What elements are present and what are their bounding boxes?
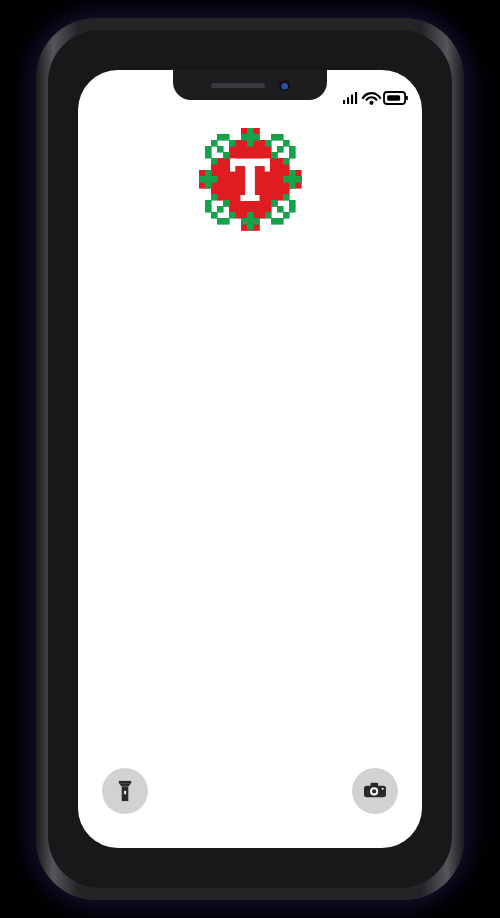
button[interactable]: Flashlight bbox=[102, 768, 148, 814]
button[interactable]: Camera bbox=[352, 768, 398, 814]
